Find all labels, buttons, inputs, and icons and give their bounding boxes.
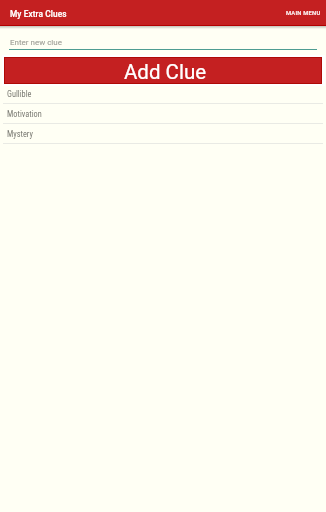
staticText: My Extra Clues	[10, 9, 67, 19]
button[interactable]: Mystery	[0, 124, 326, 144]
staticText: Mystery	[7, 129, 33, 139]
staticText: Gullible	[7, 89, 32, 99]
button[interactable]: Gullible	[0, 84, 326, 104]
staticText: Add Clue	[124, 60, 207, 84]
button[interactable]: MAIN MENU	[275, 4, 326, 21]
staticText: Enter new clue	[10, 38, 62, 47]
button[interactable]: Add Clue	[5, 58, 321, 83]
staticText: Motivation	[7, 109, 42, 119]
staticText: MAIN MENU	[286, 10, 321, 17]
button[interactable]: Motivation	[0, 104, 326, 124]
